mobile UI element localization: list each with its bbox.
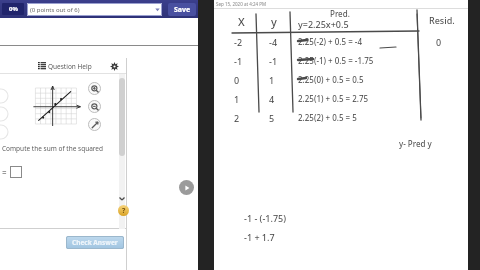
staticText: Resid. (429, 14, 455, 26)
staticText: Compute the sum of the squared (2, 144, 104, 153)
button[interactable]: Settings (108, 60, 120, 72)
staticText: 0 (234, 74, 240, 86)
button[interactable]: Help (118, 205, 129, 216)
staticText: Check Answer (72, 238, 118, 247)
staticText: 2 (234, 112, 240, 124)
staticText: y (271, 14, 277, 29)
button[interactable] (10, 166, 22, 178)
staticText: Question Help (48, 62, 92, 71)
staticText: = (2, 167, 7, 178)
button[interactable]: Zoom in (88, 82, 101, 95)
staticText: X (238, 14, 245, 29)
button[interactable]: Expand (88, 118, 101, 131)
staticText: 5 (269, 112, 275, 124)
staticText: Save (174, 5, 191, 15)
button[interactable]: Save (168, 3, 196, 16)
staticText: 2.25(2) + 0.5 = 5 (298, 112, 357, 123)
staticText: 0 (436, 36, 442, 48)
staticText: 2.25(-2) + 0.5 = -4 (298, 36, 362, 47)
button[interactable]: Zoom out (88, 100, 101, 113)
staticText: 4 (269, 93, 275, 105)
staticText: y=2.25x+0.5 (298, 18, 349, 30)
staticText: 0% (9, 5, 18, 13)
staticText: 1 (269, 74, 275, 86)
staticText: -4 (269, 36, 278, 48)
staticText: Sep 15, 2020 at 4:24 PM (216, 1, 267, 7)
staticText: -1 (234, 55, 243, 67)
button[interactable]: Next (179, 180, 194, 195)
staticText: -1 - (-1.75) (244, 212, 287, 224)
staticText: 1 (234, 93, 240, 105)
button[interactable]: (0 points out of 6) (27, 3, 162, 16)
staticText: 2.25(0) + 0.5 = 0.5 (298, 74, 364, 85)
staticText: -1 (269, 55, 278, 67)
button[interactable]: Check Answer (66, 236, 124, 249)
staticText: (0 points out of 6) (30, 6, 80, 14)
staticText: Pred. (330, 8, 350, 19)
staticText: ? (122, 206, 126, 216)
staticText: -1 + 1.7 (244, 231, 275, 243)
staticText: -2 (234, 36, 243, 48)
button[interactable]: Question Help (38, 59, 92, 73)
staticText: y- Pred y (399, 138, 432, 149)
button[interactable]: 0% (2, 3, 24, 15)
staticText: 2.25(-1) + 0.5 = -1.75 (298, 55, 374, 66)
staticText: 2.25(1) + 0.5 = 2.75 (298, 93, 369, 104)
